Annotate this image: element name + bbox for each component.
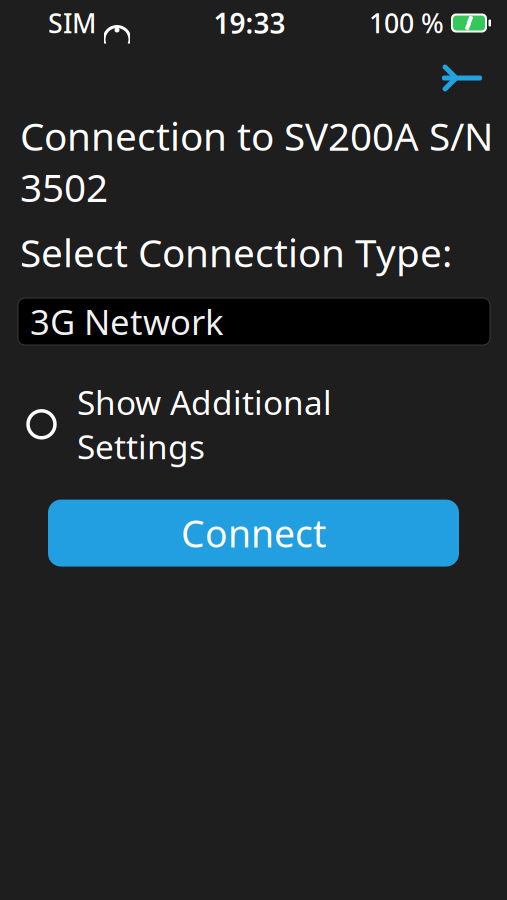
button[interactable]: Show Additional Settings bbox=[28, 372, 490, 476]
button[interactable]: Back bbox=[432, 56, 492, 100]
staticText: Connection to SV200A S/N 3502 bbox=[20, 110, 493, 213]
button[interactable]: 3G Network bbox=[18, 298, 490, 345]
staticText: SIM bbox=[48, 5, 96, 41]
button[interactable]: Connect bbox=[48, 500, 459, 567]
staticText: Select Connection Type: bbox=[20, 227, 452, 278]
staticText: Show Additional Settings bbox=[77, 380, 332, 468]
staticText: 100 % bbox=[369, 5, 444, 41]
staticText: 19:33 bbox=[213, 4, 285, 42]
staticText: 3G Network bbox=[30, 298, 224, 344]
staticText: Connect bbox=[181, 508, 326, 558]
